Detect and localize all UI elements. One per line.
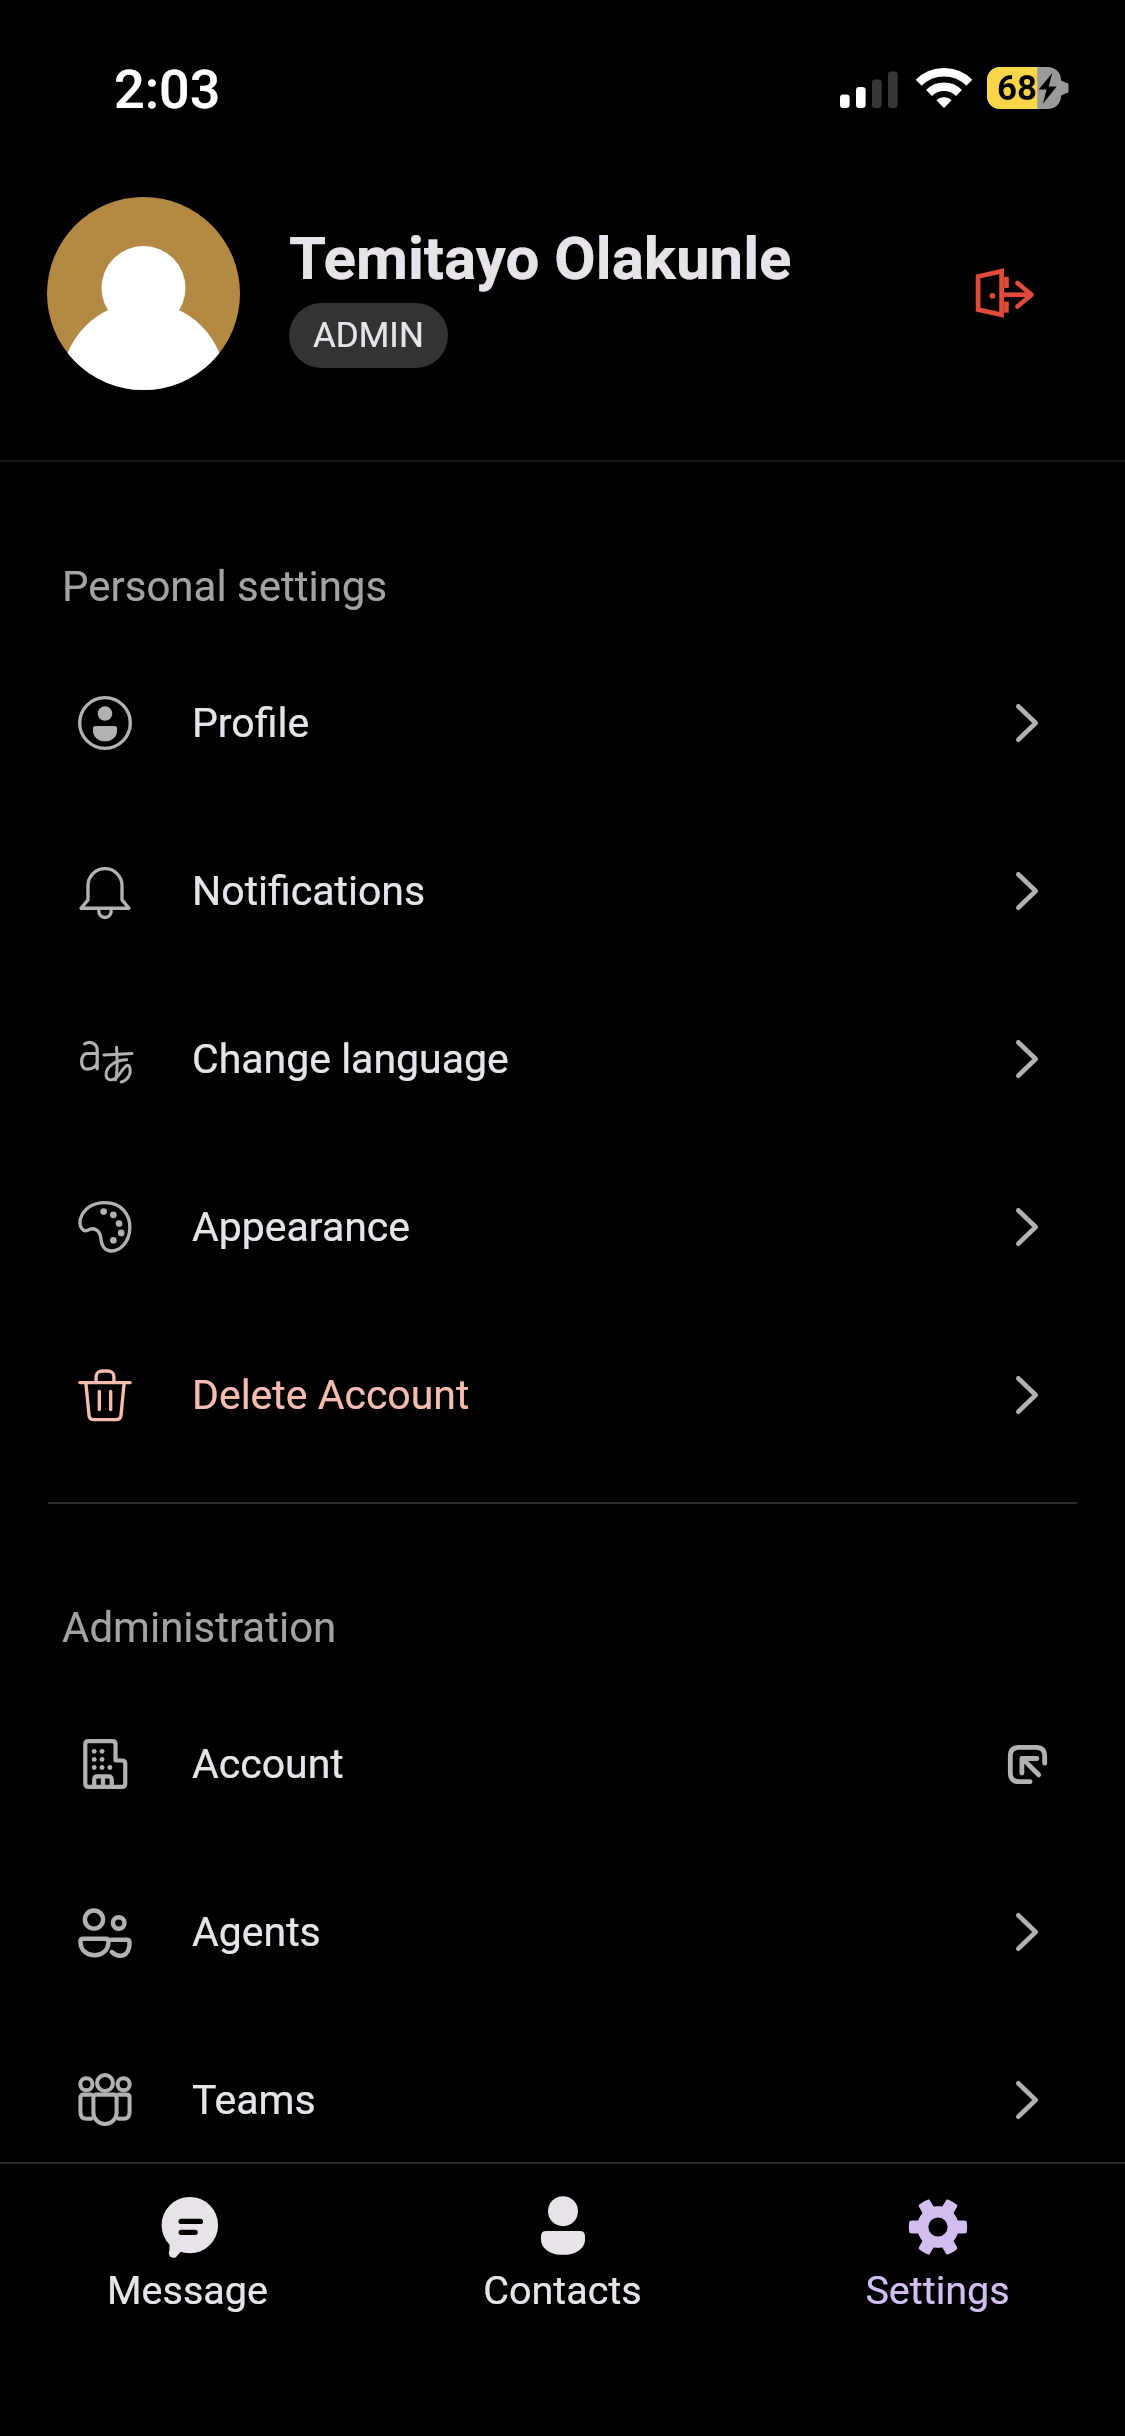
staticText: Administration	[62, 1603, 337, 1652]
button[interactable]: Notifications	[0, 807, 1125, 975]
staticText: Profile	[192, 699, 310, 747]
button[interactable]: Settings	[750, 2164, 1125, 2436]
staticText: Message	[107, 2267, 268, 2313]
staticText: ADMIN	[313, 315, 424, 356]
staticText: Appearance	[192, 1203, 411, 1251]
button[interactable]: Account	[0, 1680, 1125, 1848]
button[interactable]: Appearance	[0, 1143, 1125, 1311]
button[interactable]: Change language	[0, 975, 1125, 1143]
staticText: Personal settings	[62, 562, 388, 611]
staticText: Contacts	[483, 2267, 642, 2313]
staticText: Delete Account	[192, 1371, 470, 1419]
staticText: Temitayo Olakunle	[289, 223, 792, 293]
button[interactable]: Teams	[0, 2016, 1125, 2184]
button[interactable]: Contacts	[375, 2164, 750, 2436]
staticText: Teams	[192, 2076, 316, 2124]
staticText: Change language	[192, 1035, 509, 1083]
staticText: Notifications	[192, 867, 426, 915]
button[interactable]: Log out	[942, 233, 1062, 353]
staticText: Account	[192, 1740, 344, 1788]
button[interactable]: Delete Account	[0, 1311, 1125, 1479]
button[interactable]: Profile	[0, 639, 1125, 807]
staticText: Settings	[865, 2267, 1010, 2313]
button[interactable]: Message	[0, 2164, 375, 2436]
staticText: 68	[997, 68, 1038, 109]
button[interactable]: Agents	[0, 1848, 1125, 2016]
staticText: Agents	[192, 1908, 321, 1956]
staticText: 2:03	[114, 58, 221, 121]
